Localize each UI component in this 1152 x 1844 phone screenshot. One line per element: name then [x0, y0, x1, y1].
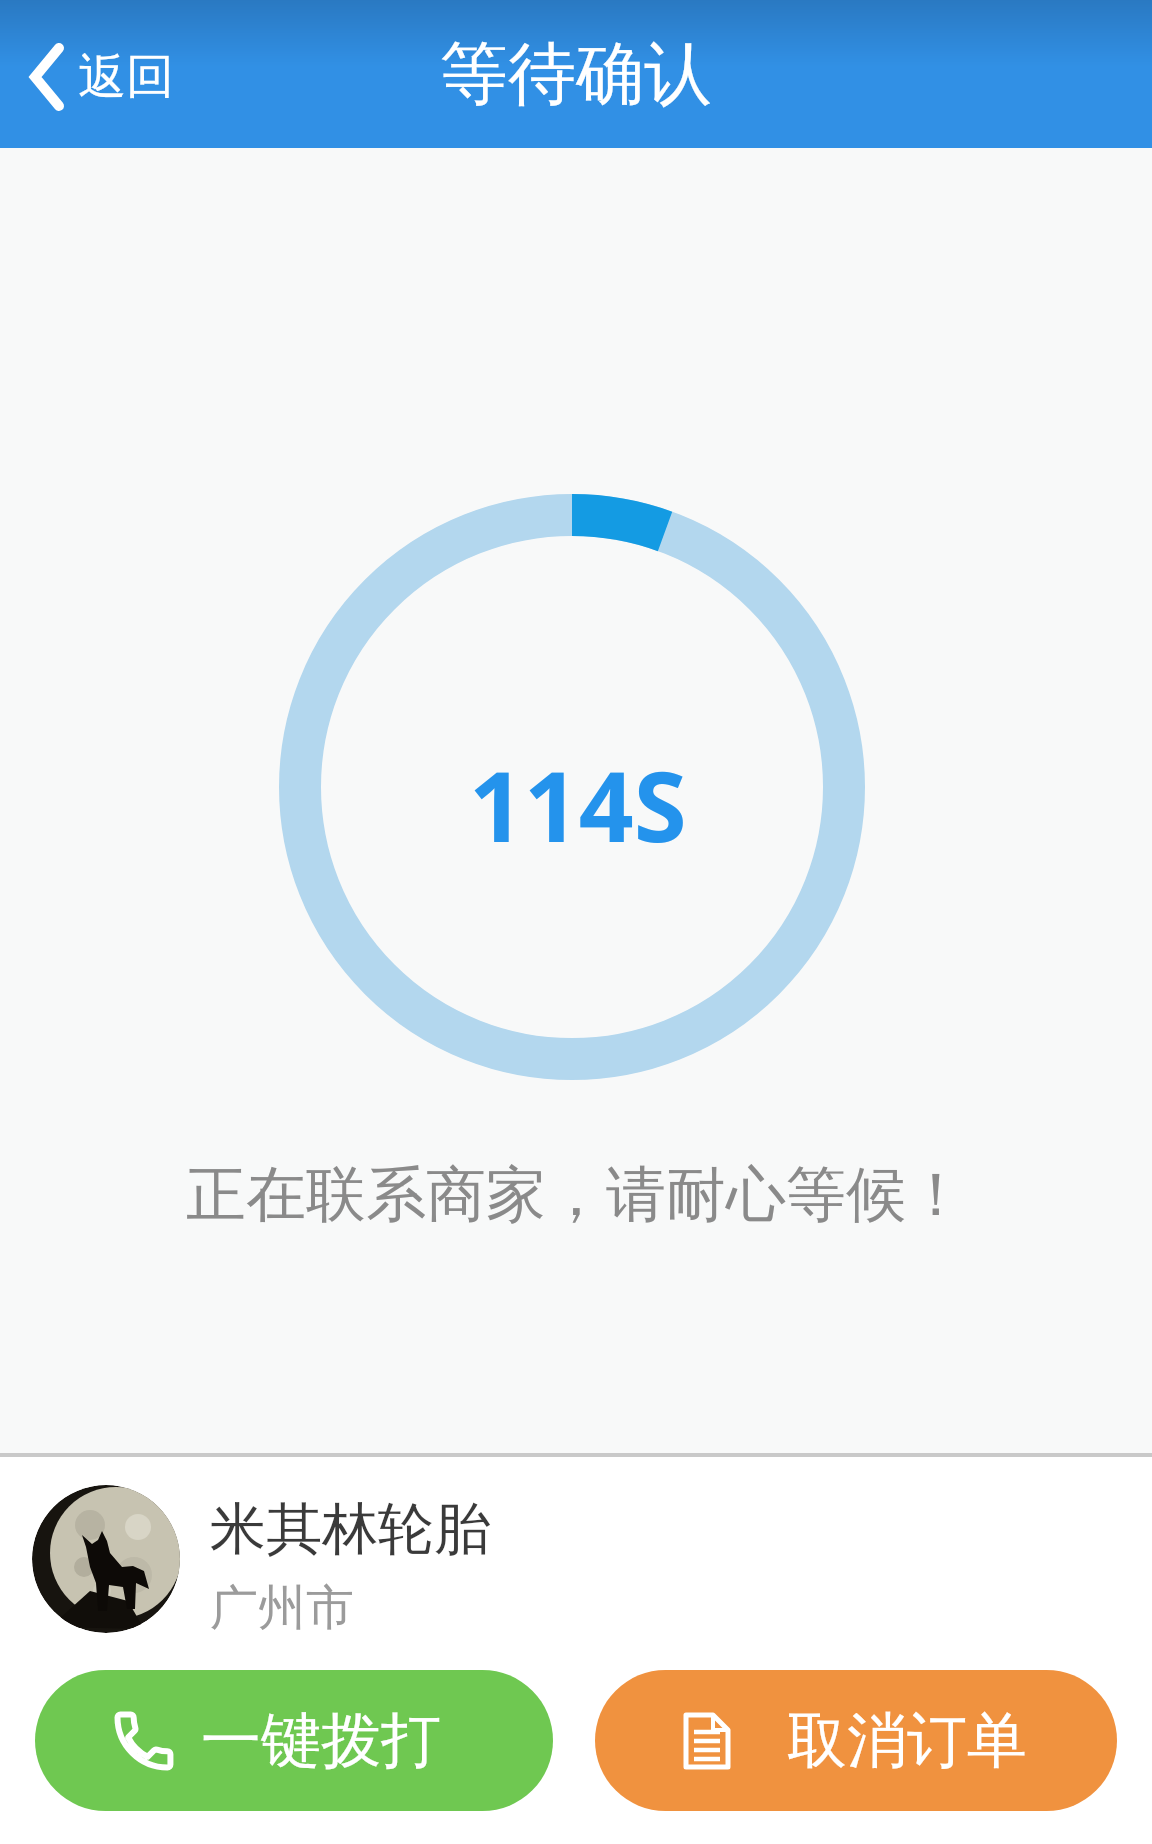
staticText: 返回 [78, 47, 174, 107]
button[interactable]: 返回 [24, 37, 180, 117]
staticText: 正在联系商家，请耐心等候！ [0, 1157, 1152, 1233]
staticText: 一键拨打 [201, 1703, 441, 1779]
staticText: 114S [469, 739, 687, 870]
staticText: 取消订单 [787, 1703, 1027, 1779]
button[interactable]: 取消订单 [595, 1670, 1117, 1811]
button[interactable]: 一键拨打 [35, 1670, 553, 1811]
staticText: 广州市 [210, 1578, 354, 1638]
staticText: 米其林轮胎 [210, 1494, 490, 1565]
staticText: 等待确认 [440, 32, 712, 118]
